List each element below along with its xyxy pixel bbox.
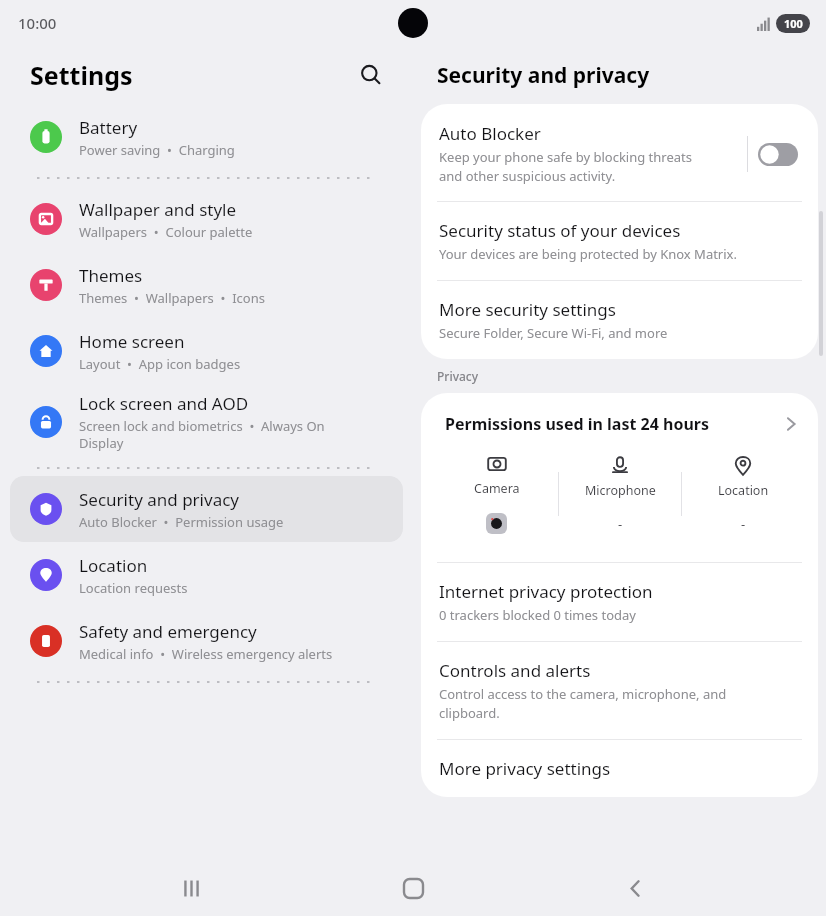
staticText: Themes • Wallpapers • Icons [79, 289, 265, 307]
staticText: 100 [784, 16, 803, 31]
staticText: More security settings [439, 298, 616, 321]
staticText: Settings [30, 58, 133, 92]
button[interactable]: Internet privacy protection [421, 563, 818, 641]
staticText: Power saving • Charging [79, 141, 235, 159]
staticText: Layout • App icon badges [79, 355, 241, 373]
button[interactable]: Wallpaper and style [10, 186, 403, 252]
button[interactable]: Safety and emergency [10, 608, 403, 674]
staticText: Secure Folder, Secure Wi-Fi, and more [439, 324, 668, 342]
staticText: Controls and alerts [439, 659, 591, 682]
staticText: Safety and emergency [79, 620, 257, 643]
button[interactable]: Auto Blocker [421, 104, 818, 201]
staticText: Control access to the camera, microphone… [439, 685, 727, 722]
button[interactable]: Lock screen and AOD [10, 384, 403, 460]
button[interactable]: Security status of your devices [421, 202, 818, 280]
button[interactable]: Home screen [10, 318, 403, 384]
staticText: Location [79, 554, 148, 577]
button[interactable]: Permissions used in last 24 hours [421, 393, 818, 443]
staticText: Privacy [437, 368, 479, 384]
staticText: Internet privacy protection [439, 580, 653, 603]
button[interactable]: Security and privacy [10, 476, 403, 542]
button[interactable]: Auto Blocker toggle [748, 130, 808, 178]
staticText: Medical info • Wireless emergency alerts [79, 645, 333, 663]
staticText: More privacy settings [439, 757, 611, 780]
staticText: Screen lock and biometrics • Always On D… [79, 417, 325, 452]
staticText: Security and privacy [437, 61, 650, 90]
other: Open permissions [780, 413, 802, 435]
button[interactable]: Microphone [559, 451, 681, 537]
staticText: Wallpapers • Colour palette [79, 223, 253, 241]
staticText: 10:00 [18, 13, 57, 33]
button[interactable]: Recent apps [160, 860, 222, 916]
button[interactable]: More privacy settings [421, 740, 818, 797]
staticText: Security and privacy [79, 488, 240, 511]
button[interactable]: More security settings [421, 281, 818, 359]
staticText: Permissions used in last 24 hours [445, 413, 780, 435]
button[interactable]: Location [10, 542, 403, 608]
staticText: Location [718, 482, 769, 499]
staticText: Location requests [79, 579, 188, 597]
staticText: Camera [474, 480, 520, 497]
staticText: Themes [79, 264, 143, 287]
button[interactable]: Battery [10, 104, 403, 170]
button[interactable]: Search [349, 53, 393, 97]
button[interactable]: Back [604, 860, 666, 916]
staticText: Battery [79, 116, 138, 139]
button[interactable]: Home [382, 860, 444, 916]
staticText: 0 trackers blocked 0 times today [439, 606, 636, 624]
staticText: Home screen [79, 330, 185, 353]
staticText: Lock screen and AOD [79, 392, 249, 415]
button[interactable]: Themes [10, 252, 403, 318]
staticText: Security status of your devices [439, 219, 681, 242]
staticText: Keep your phone safe by blocking threats… [439, 148, 692, 185]
staticText: - [618, 515, 623, 533]
staticText: Microphone [585, 482, 656, 499]
staticText: - [741, 515, 746, 533]
staticText: Auto Blocker • Permission usage [79, 513, 284, 531]
button[interactable]: Location [682, 451, 804, 537]
button[interactable]: Controls and alerts [421, 642, 818, 739]
button[interactable]: Camera [435, 449, 558, 538]
staticText: Wallpaper and style [79, 198, 237, 221]
staticText: Your devices are being protected by Knox… [439, 245, 737, 263]
staticText: Auto Blocker [439, 122, 541, 145]
